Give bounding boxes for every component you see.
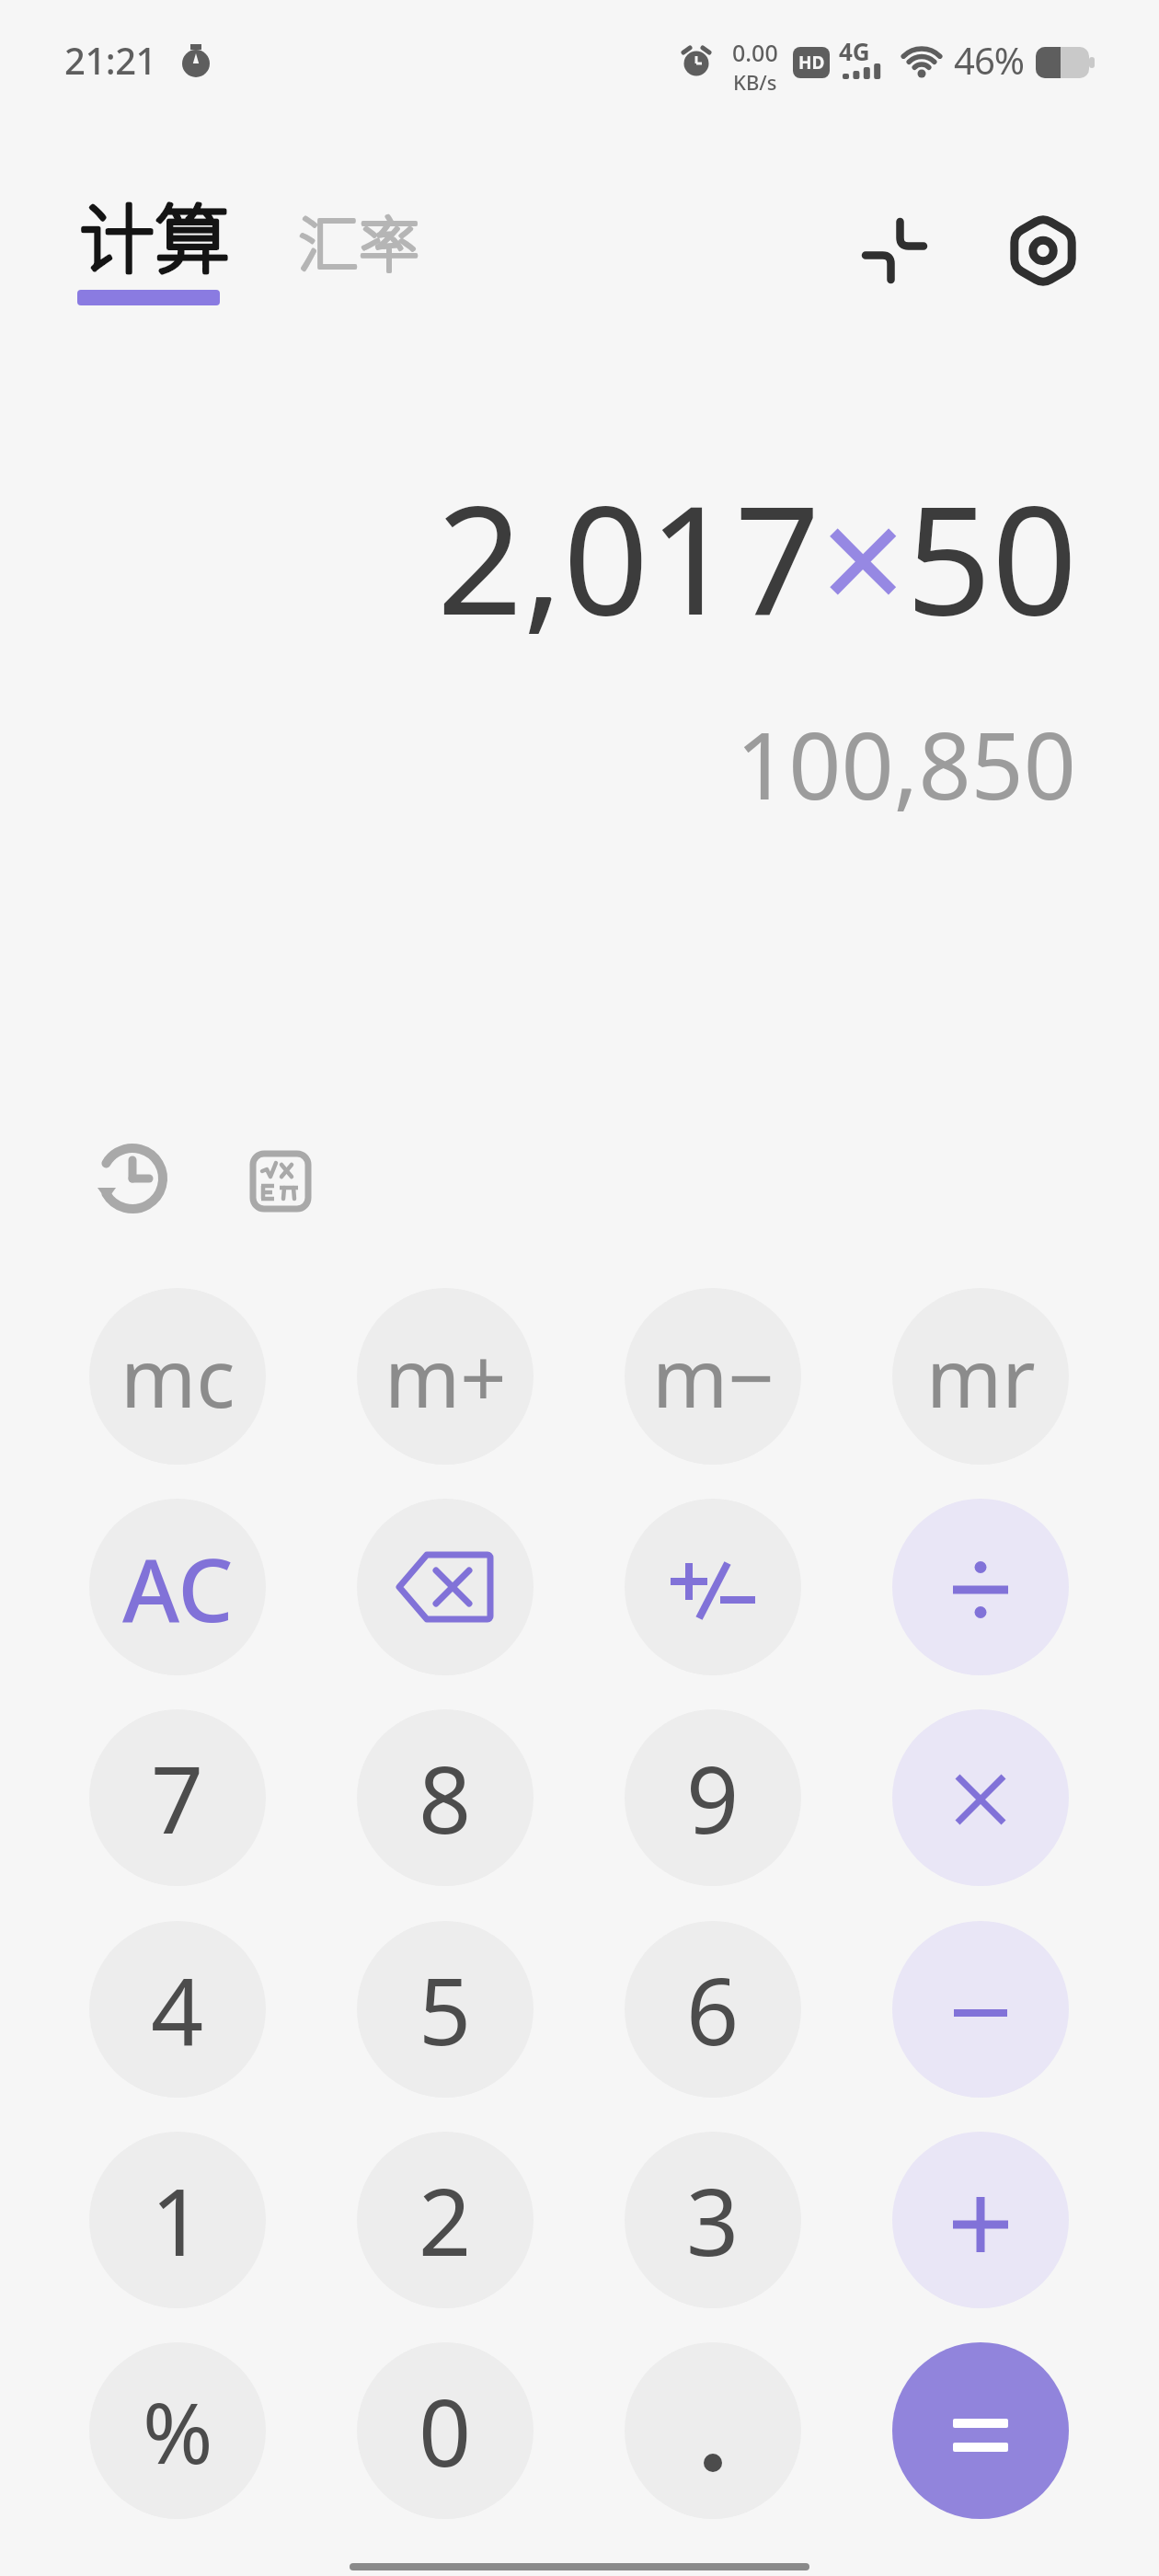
staticText: 3	[686, 2157, 740, 2283]
staticText: 0	[419, 2368, 472, 2493]
button[interactable]: mr	[892, 1288, 1069, 1465]
staticText: 100,850	[736, 701, 1076, 826]
button[interactable]	[892, 2132, 1069, 2308]
button[interactable]: 3	[625, 2132, 801, 2308]
staticText: 8	[419, 1735, 472, 1860]
button[interactable]: 2	[357, 2132, 534, 2308]
button[interactable]	[250, 1151, 311, 1212]
staticText: 2,017×50	[437, 454, 1078, 659]
staticText: 汇率	[298, 196, 419, 284]
staticText: %	[143, 2374, 213, 2489]
button[interactable]: 9	[625, 1709, 801, 1886]
staticText: m−	[652, 1321, 775, 1432]
button[interactable]	[96, 1142, 169, 1215]
staticText: KB/s	[733, 68, 777, 96]
button[interactable]: m+	[357, 1288, 534, 1465]
button[interactable]: 5	[357, 1921, 534, 2098]
staticText: mc	[120, 1321, 235, 1432]
staticText: 21:21	[64, 35, 156, 85]
button[interactable]: 计算	[79, 179, 231, 289]
button[interactable]: AC	[89, 1499, 266, 1675]
staticText: 1	[151, 2157, 204, 2283]
button[interactable]: %	[89, 2342, 266, 2519]
button[interactable]: 4	[89, 1921, 266, 2098]
staticText: 4G	[839, 35, 870, 67]
staticText: HD	[798, 51, 825, 75]
staticText: 7	[151, 1735, 204, 1860]
staticText: AC	[122, 1528, 234, 1647]
button[interactable]: 0	[357, 2342, 534, 2519]
button[interactable]: 1	[89, 2132, 266, 2308]
button[interactable]	[892, 1499, 1069, 1675]
staticText: m+	[384, 1321, 507, 1432]
button[interactable]	[892, 1709, 1069, 1886]
button[interactable]	[892, 1921, 1069, 2098]
button[interactable]	[625, 2342, 801, 2519]
button[interactable]: 6	[625, 1921, 801, 2098]
staticText: 2	[419, 2157, 472, 2283]
staticText: mr	[926, 1321, 1036, 1432]
button[interactable]	[892, 2342, 1069, 2519]
button[interactable]: 汇率	[298, 196, 419, 284]
staticText: 0.00	[732, 37, 778, 68]
staticText: 5	[419, 1947, 472, 2072]
button[interactable]: mc	[89, 1288, 266, 1465]
button[interactable]	[1008, 215, 1080, 287]
button[interactable]: m−	[625, 1288, 801, 1465]
staticText: 4	[151, 1947, 204, 2072]
staticText: 46%	[954, 35, 1024, 85]
staticText: 计算	[79, 179, 231, 289]
button[interactable]	[855, 212, 929, 285]
staticText: 6	[686, 1947, 740, 2072]
button[interactable]: 8	[357, 1709, 534, 1886]
staticText: 汇率	[298, 196, 419, 284]
button[interactable]	[625, 1499, 801, 1675]
button[interactable]	[357, 1499, 534, 1675]
staticText: 计算	[79, 179, 231, 289]
button[interactable]: 7	[89, 1709, 266, 1886]
staticText: 9	[686, 1735, 740, 1860]
